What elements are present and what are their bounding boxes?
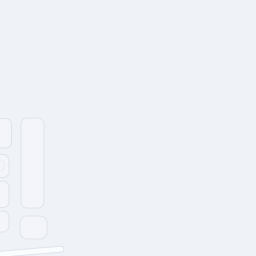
button[interactable]: Item 3 [0, 181, 9, 207]
button[interactable]: Slider [0, 249, 64, 255]
button[interactable]: Detail [21, 118, 44, 208]
button[interactable]: Item 1 [0, 118, 11, 148]
button[interactable]: Item 4 [0, 211, 9, 232]
button[interactable]: Item 2 [0, 154, 9, 177]
button[interactable]: Action [20, 216, 47, 239]
